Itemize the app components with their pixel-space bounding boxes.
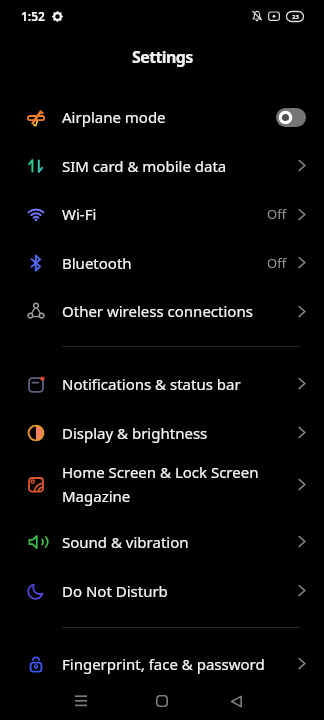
button[interactable]: Home Screen & Lock Screen bbox=[0, 457, 324, 517]
button[interactable] bbox=[276, 108, 306, 127]
staticText: Off bbox=[267, 205, 287, 223]
staticText: Home Screen & Lock Screen bbox=[62, 462, 259, 482]
staticText: Settings bbox=[132, 46, 193, 68]
staticText: SIM card & mobile data bbox=[62, 156, 227, 176]
button[interactable]: SIM card & mobile data bbox=[0, 141, 324, 190]
staticText: Wi-Fi bbox=[62, 204, 97, 224]
button[interactable]: Display & brightness bbox=[0, 408, 324, 457]
staticText: Do Not Disturb bbox=[62, 581, 168, 601]
staticText: Fingerprint, face & password bbox=[62, 654, 265, 674]
button[interactable]: Wi-Fi bbox=[0, 190, 324, 238]
button[interactable]: Do Not Disturb bbox=[0, 566, 324, 615]
staticText: Bluetooth bbox=[62, 253, 132, 273]
button[interactable]: Fingerprint, face & password bbox=[0, 639, 324, 688]
button[interactable] bbox=[150, 689, 174, 713]
staticText: Sound & vibration bbox=[62, 532, 189, 552]
staticText: Display & brightness bbox=[62, 423, 208, 443]
staticText: Airplane mode bbox=[62, 107, 166, 127]
staticText: Other wireless connections bbox=[62, 301, 253, 321]
button[interactable]: Other wireless connections bbox=[0, 287, 324, 335]
staticText: Notifications & status bar bbox=[62, 374, 241, 394]
button[interactable]: Bluetooth bbox=[0, 238, 324, 287]
staticText: 1:52 bbox=[21, 8, 45, 24]
button[interactable]: Notifications & status bar bbox=[0, 359, 324, 408]
staticText: 23 bbox=[292, 13, 299, 21]
staticText: Off bbox=[267, 254, 287, 272]
button[interactable]: Sound & vibration bbox=[0, 517, 324, 566]
button[interactable] bbox=[69, 689, 93, 713]
staticText: Magazine bbox=[62, 486, 131, 506]
button[interactable] bbox=[224, 689, 248, 713]
button[interactable]: Airplane mode bbox=[0, 93, 324, 141]
